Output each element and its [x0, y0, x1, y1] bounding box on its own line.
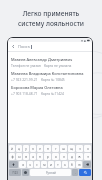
button[interactable]: ж: [76, 153, 83, 160]
button[interactable]: й: [9, 145, 15, 152]
staticText: ю: [78, 163, 81, 167]
button[interactable]: Назад: [11, 44, 16, 49]
staticText: н: [47, 147, 49, 151]
button[interactable]: Макеева Владимира Константиновна: [8, 69, 92, 83]
staticText: у: [25, 147, 27, 151]
button[interactable]: Пробел: [30, 169, 71, 176]
staticText: ?123: [12, 171, 18, 175]
staticText: п: [39, 155, 41, 159]
button[interactable]: у: [23, 145, 29, 152]
staticText: д: [71, 155, 73, 159]
button[interactable]: е: [37, 145, 43, 152]
button[interactable]: а: [30, 153, 36, 160]
staticText: ш: [62, 147, 65, 151]
staticText: ч: [29, 163, 31, 167]
button[interactable]: Эмодзи: [22, 169, 29, 176]
staticText: Легко применять: [0, 9, 102, 18]
staticText: ц: [18, 147, 20, 151]
staticText: Поиск: [18, 44, 30, 49]
button[interactable]: я: [19, 161, 26, 168]
button[interactable]: Цифры: [9, 169, 21, 176]
staticText: в: [25, 155, 27, 159]
button[interactable]: к: [30, 145, 36, 152]
button[interactable]: щ: [68, 145, 75, 152]
staticText: м: [43, 163, 46, 167]
button[interactable]: д: [68, 153, 75, 160]
staticText: о: [55, 155, 57, 159]
staticText: г: [55, 147, 57, 151]
staticText: а: [32, 155, 34, 159]
button[interactable]: б: [69, 161, 75, 168]
staticText: с: [36, 163, 38, 167]
button[interactable]: р: [44, 153, 51, 160]
staticText: ь: [64, 163, 66, 167]
staticText: ж: [78, 155, 81, 159]
button[interactable]: ь: [62, 161, 68, 168]
button[interactable]: ц: [16, 145, 22, 152]
button[interactable]: о: [52, 153, 59, 160]
button[interactable]: Точка: [72, 169, 78, 176]
button[interactable]: ф: [9, 153, 15, 160]
button[interactable]: х: [84, 145, 91, 152]
staticText: э: [87, 155, 89, 159]
button[interactable]: Поиск: [79, 169, 91, 176]
staticText: Карта не указана: [44, 63, 72, 67]
staticText: е: [39, 147, 41, 151]
button[interactable]: с: [34, 161, 40, 168]
button[interactable]: э: [84, 153, 91, 160]
staticText: Борисова Мария Олеговна: [11, 85, 89, 90]
staticText: +7 903 118-48-71: [11, 91, 38, 95]
staticText: систему лояльности: [0, 19, 102, 28]
staticText: ы: [18, 155, 21, 159]
button[interactable]: Борисова Мария Олеговна: [8, 83, 92, 97]
button[interactable]: в: [23, 153, 29, 160]
button[interactable]: ч: [27, 161, 33, 168]
button[interactable]: ш: [60, 145, 67, 152]
button[interactable]: г: [52, 145, 59, 152]
staticText: л: [63, 155, 65, 159]
staticText: .: [75, 171, 76, 175]
staticText: Макеев Александр Дмитриевич: [11, 57, 89, 62]
button[interactable]: и: [48, 161, 54, 168]
button[interactable]: з: [76, 145, 83, 152]
staticText: б: [71, 163, 73, 167]
staticText: т: [57, 163, 59, 167]
staticText: Карта №11424: [41, 91, 64, 95]
staticText: к: [32, 147, 34, 151]
button[interactable]: Shift: [9, 161, 18, 168]
staticText: р: [47, 155, 49, 159]
button[interactable]: т: [55, 161, 61, 168]
staticText: х: [87, 147, 89, 151]
staticText: я: [22, 163, 24, 167]
staticText: ф: [11, 155, 14, 159]
staticText: Карта № 10845: [41, 77, 65, 81]
button[interactable]: л: [60, 153, 67, 160]
button[interactable]: Backspace: [83, 161, 91, 168]
staticText: й: [11, 147, 13, 151]
staticText: Макеева Владимира Константиновна: [11, 71, 89, 76]
staticText: +7 923 221-99-21: [11, 77, 38, 81]
staticText: Русский: [46, 171, 56, 175]
button[interactable]: ы: [16, 153, 22, 160]
button[interactable]: ю: [76, 161, 82, 168]
button[interactable]: н: [44, 145, 51, 152]
staticText: з: [79, 147, 81, 151]
staticText: и: [50, 163, 52, 167]
staticText: щ: [70, 147, 73, 151]
button[interactable]: Назад: [8, 42, 92, 51]
button[interactable]: Макеев Александр Дмитриевич: [8, 55, 92, 69]
button[interactable]: п: [37, 153, 43, 160]
button[interactable]: м: [41, 161, 47, 168]
staticText: Телефон не указан: [11, 63, 41, 67]
